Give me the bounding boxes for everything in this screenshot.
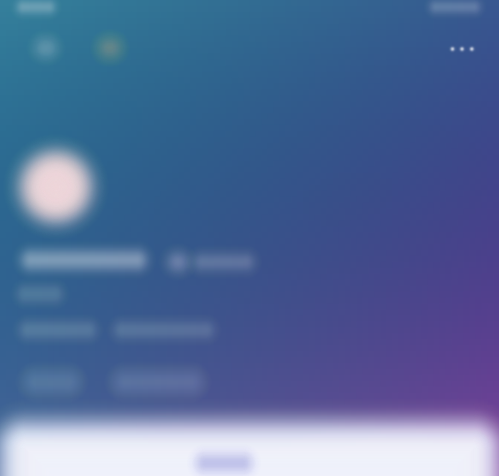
- button[interactable]: More options: [443, 27, 487, 71]
